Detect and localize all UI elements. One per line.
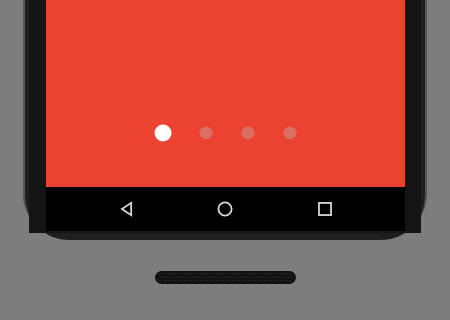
button[interactable]: Back [105, 187, 149, 231]
button[interactable] [46, 0, 405, 187]
button[interactable]: Home [203, 187, 247, 231]
button[interactable]: Recent apps [303, 187, 347, 231]
